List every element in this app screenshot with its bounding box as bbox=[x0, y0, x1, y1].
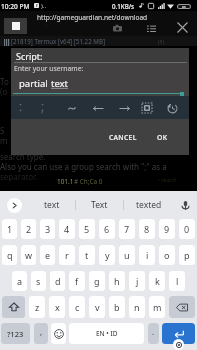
button[interactable]: p bbox=[179, 245, 195, 265]
button[interactable]: a bbox=[12, 271, 27, 291]
other: Select all bbox=[142, 103, 152, 113]
button[interactable]: Voice input bbox=[173, 191, 197, 219]
staticText: y bbox=[105, 249, 110, 261]
button[interactable]: 7 bbox=[119, 219, 135, 239]
button[interactable]: x bbox=[49, 296, 65, 318]
other: Tilde bbox=[68, 106, 76, 111]
staticText: # Ch;Ca 0 bbox=[74, 177, 103, 186]
other: Left bbox=[93, 106, 104, 111]
button[interactable]: 6 bbox=[99, 219, 115, 239]
staticText: i bbox=[146, 249, 149, 261]
other: Colon bbox=[19, 101, 22, 113]
staticText: Text bbox=[91, 199, 108, 211]
staticText: Script: bbox=[16, 50, 43, 62]
staticText: m bbox=[0, 135, 8, 146]
button[interactable]: m bbox=[149, 296, 165, 318]
staticText: 9 bbox=[164, 223, 170, 235]
staticText: , bbox=[40, 326, 43, 337]
button[interactable]: w bbox=[21, 245, 36, 265]
button[interactable]: text bbox=[29, 191, 75, 219]
button[interactable]: Enter bbox=[162, 323, 195, 344]
button[interactable]: Tab preview bbox=[4, 18, 27, 34]
staticText: b bbox=[114, 301, 120, 313]
button[interactable]: 2 bbox=[21, 219, 36, 239]
staticText: v bbox=[95, 301, 100, 313]
staticText: j bbox=[136, 275, 139, 287]
staticText: 6 bbox=[104, 223, 110, 235]
other: History bbox=[167, 103, 178, 114]
staticText: a bbox=[17, 275, 23, 287]
button[interactable]: CANCEL bbox=[104, 129, 142, 146]
button[interactable]: OK bbox=[152, 129, 173, 146]
button[interactable]: Emoji bbox=[51, 323, 66, 344]
staticText: ?123 bbox=[7, 329, 24, 339]
button[interactable]: h bbox=[109, 271, 125, 291]
staticText: EN • ID bbox=[96, 329, 118, 338]
staticText: l bbox=[176, 275, 179, 287]
button[interactable]: o bbox=[159, 245, 175, 265]
button[interactable]: i bbox=[139, 245, 155, 265]
staticText: f bbox=[75, 275, 79, 287]
button[interactable]: texted bbox=[124, 191, 173, 219]
button[interactable]: f bbox=[69, 271, 85, 291]
button[interactable]: Shift bbox=[2, 296, 25, 318]
staticText: e bbox=[45, 249, 51, 261]
button[interactable]: 5 bbox=[79, 219, 95, 239]
staticText: 10:20 PM bbox=[1, 2, 30, 11]
other: Close bbox=[177, 22, 188, 33]
button[interactable]: g bbox=[89, 271, 105, 291]
staticText: To bbox=[0, 76, 9, 87]
staticText: CANCEL bbox=[109, 133, 137, 142]
button[interactable]: 9 bbox=[159, 219, 175, 239]
button[interactable]: . bbox=[148, 323, 159, 344]
staticText: S bbox=[0, 125, 5, 136]
staticText: Also you can use a group search with ";"… bbox=[0, 161, 167, 172]
staticText: r bbox=[65, 249, 69, 261]
button[interactable]: v bbox=[89, 296, 105, 318]
button[interactable]: y bbox=[99, 245, 115, 265]
staticText: w bbox=[25, 249, 33, 261]
staticText: 3 bbox=[45, 223, 51, 235]
button[interactable]: d bbox=[50, 271, 65, 291]
button[interactable]: 1 bbox=[2, 219, 17, 239]
staticText: ).. bbox=[41, 2, 47, 10]
staticText: m bbox=[153, 301, 162, 313]
staticText: s bbox=[36, 275, 41, 287]
button[interactable]: b bbox=[109, 296, 125, 318]
button[interactable]: e bbox=[40, 245, 55, 265]
staticText: 2 bbox=[26, 223, 32, 235]
other: Semicolon bbox=[41, 101, 44, 113]
button[interactable]: n bbox=[129, 296, 145, 318]
button[interactable]: 8 bbox=[139, 219, 155, 239]
button[interactable]: Text bbox=[76, 191, 123, 219]
staticText: h bbox=[114, 275, 120, 287]
button[interactable]: j bbox=[129, 271, 145, 291]
button[interactable]: q bbox=[2, 245, 17, 265]
staticText: text bbox=[51, 77, 69, 90]
button[interactable]: r bbox=[59, 245, 75, 265]
button[interactable]: s bbox=[31, 271, 46, 291]
staticText: OK bbox=[157, 133, 168, 142]
button[interactable]: k bbox=[149, 271, 165, 291]
button[interactable]: u bbox=[119, 245, 135, 265]
button[interactable]: l bbox=[169, 271, 185, 291]
button[interactable]: c bbox=[69, 296, 85, 318]
staticText: 101.1 bbox=[57, 177, 74, 186]
button[interactable]: 4 bbox=[59, 219, 75, 239]
staticText: 1 bbox=[7, 223, 13, 235]
button[interactable]: More suggestions bbox=[0, 191, 29, 219]
button[interactable]: Backspace bbox=[169, 296, 195, 318]
button[interactable]: z bbox=[29, 296, 45, 318]
button[interactable]: ?123 bbox=[1, 323, 30, 344]
staticText: t bbox=[85, 249, 89, 261]
button[interactable]: t bbox=[79, 245, 95, 265]
staticText: g bbox=[94, 275, 100, 287]
button[interactable]: EN • ID bbox=[69, 323, 144, 344]
other: Camera bbox=[113, 24, 122, 33]
staticText: 5 bbox=[84, 223, 90, 235]
button[interactable]: 0 bbox=[179, 219, 195, 239]
staticText: 4 bbox=[64, 223, 70, 235]
staticText: q bbox=[7, 249, 13, 261]
button[interactable]: 3 bbox=[40, 219, 55, 239]
button[interactable]: , bbox=[34, 323, 48, 344]
